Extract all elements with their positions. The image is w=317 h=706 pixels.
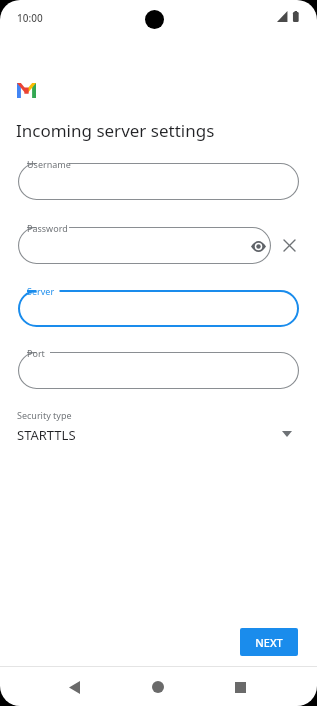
staticText: Username xyxy=(27,158,71,170)
button[interactable]: Back xyxy=(56,672,92,702)
button[interactable]: Recent apps xyxy=(222,672,258,702)
button[interactable]: Port xyxy=(18,352,299,389)
staticText: STARTTLS xyxy=(17,426,76,444)
button[interactable]: Server xyxy=(18,290,299,327)
button[interactable]: Clear password xyxy=(279,235,300,256)
staticText: Password xyxy=(27,222,68,234)
button[interactable]: Username xyxy=(18,163,299,200)
button[interactable]: Home xyxy=(140,672,176,702)
staticText: Incoming server settings xyxy=(16,119,215,142)
staticText: 10:00 xyxy=(17,11,43,25)
staticText: Port xyxy=(27,347,45,359)
button[interactable]: Show password xyxy=(246,234,270,258)
button[interactable]: Security type xyxy=(14,405,302,453)
staticText: Server xyxy=(27,285,55,297)
button[interactable]: NEXT xyxy=(240,628,298,656)
staticText: Security type xyxy=(17,409,72,421)
staticText: NEXT xyxy=(255,635,283,650)
button[interactable]: Password xyxy=(18,227,271,264)
